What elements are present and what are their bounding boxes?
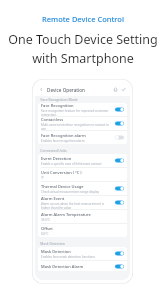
button[interactable]: Unit Conversion ( °C ) — [38, 168, 127, 181]
button[interactable]: Toggle on — [115, 264, 124, 269]
staticText: Alarm Alarm Temperature — [41, 212, 91, 217]
staticText: Face Recognition alarm — [41, 133, 86, 138]
button[interactable]: Thermal Device Usage — [38, 182, 127, 195]
staticText: 36.5°C — [41, 218, 51, 222]
staticText: Contactless — [41, 117, 64, 122]
button[interactable]: Face Recognition — [38, 103, 127, 116]
button[interactable]: Alarm Event — [38, 196, 127, 209]
button[interactable]: Home — [113, 87, 118, 92]
staticText: Mask Detection Alarm — [41, 264, 84, 269]
button[interactable]: Confirm — [121, 87, 126, 92]
staticText: Face recognition feature for improved cu… — [41, 109, 112, 116]
staticText: Unit Conversion ( °C ) — [41, 170, 82, 175]
staticText: Enables face mask detection functions — [41, 255, 95, 259]
button[interactable]: Toggle on — [115, 200, 124, 205]
staticText: Check actual measurement range display — [41, 190, 100, 194]
button[interactable]: Mask Detection Alarm — [38, 261, 127, 271]
button[interactable]: Toggle on — [115, 186, 124, 191]
staticText: Alarm occurs when the host measurement i… — [41, 202, 112, 209]
staticText: Mask Detection — [41, 249, 71, 254]
button[interactable]: Toggle on — [115, 251, 124, 256]
button[interactable]: Toggle on — [115, 158, 124, 163]
staticText: Offset — [41, 226, 53, 231]
staticText: Connected Units — [40, 148, 67, 153]
button[interactable]: Back — [39, 87, 44, 92]
staticText: Multi-camera interface recognition no co… — [41, 123, 112, 130]
button[interactable]: Contactless — [38, 117, 127, 130]
staticText: Event Detection — [41, 156, 72, 161]
button[interactable]: Toggle on — [115, 121, 124, 126]
button[interactable]: Toggle on — [115, 107, 124, 112]
button[interactable]: Face Recognition alarm — [38, 131, 127, 144]
staticText: Enable a specific area of field event co… — [41, 162, 102, 166]
staticText: One Touch Device Setting — [8, 31, 158, 48]
staticText: Thermal Device Usage — [41, 184, 84, 189]
staticText: Device Operation — [47, 87, 85, 93]
staticText: 0.0°C — [41, 232, 49, 236]
button[interactable]: Mask Detection — [38, 247, 127, 260]
button[interactable]: Back — [35, 83, 130, 96]
staticText: Mask Detection — [40, 241, 65, 246]
button[interactable]: Event Detection — [38, 154, 127, 167]
button[interactable]: Toggle off — [115, 135, 124, 140]
staticText: Face Recognition — [41, 103, 74, 108]
staticText: °F — [41, 176, 44, 180]
staticText: Enables face recognition alarm — [41, 139, 85, 143]
staticText: Face Recognition Mode — [40, 97, 78, 102]
button[interactable]: Offset — [38, 224, 127, 237]
staticText: with Smartphone — [32, 50, 134, 67]
staticText: Remote Device Control — [42, 14, 124, 24]
button[interactable]: Alarm Alarm Temperature — [38, 210, 127, 223]
staticText: Alarm Event — [41, 196, 65, 201]
